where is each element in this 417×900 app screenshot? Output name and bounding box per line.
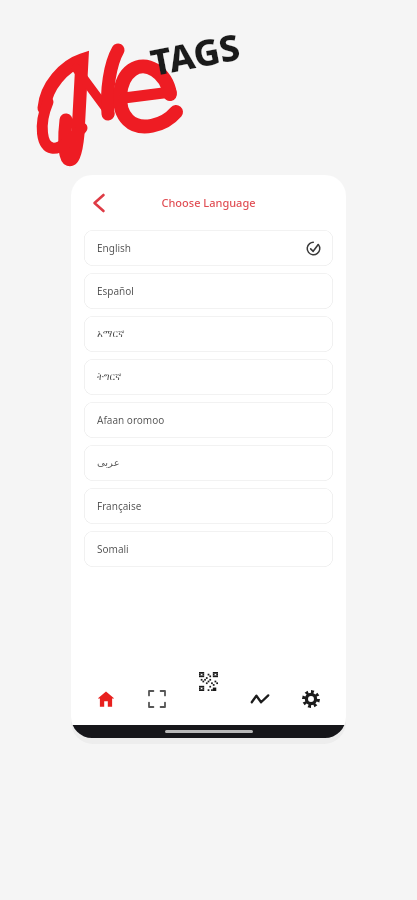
button[interactable]: عربى — [84, 445, 333, 481]
button[interactable]: Française — [84, 488, 333, 524]
button[interactable]: Activity — [243, 682, 277, 716]
button[interactable]: English — [84, 230, 333, 266]
button[interactable]: Scan — [140, 682, 174, 716]
button[interactable]: Back — [83, 187, 115, 219]
staticText: English — [97, 241, 132, 255]
staticText: Somali — [97, 542, 129, 556]
button[interactable]: Scan QR code — [186, 659, 231, 704]
button[interactable]: አማርኛ — [84, 316, 333, 352]
staticText: ትግርኛ — [97, 372, 122, 382]
staticText: Choose Language — [161, 195, 256, 210]
staticText: Française — [97, 499, 142, 513]
staticText: TAGS — [146, 22, 244, 87]
staticText: አማርኛ — [97, 329, 125, 339]
staticText: Afaan oromoo — [97, 413, 165, 427]
button[interactable]: ትግርኛ — [84, 359, 333, 395]
button[interactable]: Somali — [84, 531, 333, 567]
button[interactable]: Español — [84, 273, 333, 309]
staticText: Español — [97, 284, 134, 298]
staticText: عربى — [97, 457, 120, 469]
button[interactable]: Settings — [294, 682, 328, 716]
button[interactable]: Afaan oromoo — [84, 402, 333, 438]
button[interactable]: Home — [89, 682, 123, 716]
